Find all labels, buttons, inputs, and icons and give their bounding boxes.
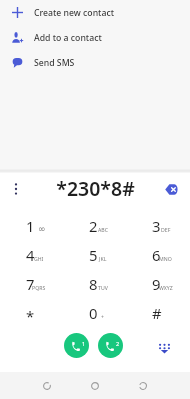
button[interactable]: Key # xyxy=(127,298,190,327)
staticText: MNO xyxy=(159,255,172,262)
staticText: 1 xyxy=(82,340,86,347)
button[interactable]: Key * xyxy=(0,298,64,327)
staticText: WXYZ xyxy=(159,284,173,291)
staticText: ABC xyxy=(98,226,108,233)
staticText: 2 xyxy=(116,340,120,347)
button[interactable]: Call with SIM 1 xyxy=(64,333,89,358)
button[interactable]: Key 4 xyxy=(0,240,64,269)
staticText: * xyxy=(26,306,35,326)
button[interactable]: Call with SIM 2 xyxy=(98,333,123,358)
staticText: GHI xyxy=(34,255,44,262)
button[interactable]: Key 8 xyxy=(64,269,127,298)
button[interactable]: Key 6 xyxy=(127,240,190,269)
button[interactable]: Recents xyxy=(131,374,155,398)
staticText: 5 xyxy=(89,245,98,265)
button[interactable]: Backspace xyxy=(162,180,180,198)
staticText: 4 xyxy=(26,245,35,265)
button[interactable]: Key 5 xyxy=(64,240,127,269)
button[interactable]: Key 1 xyxy=(0,211,64,240)
staticText: + xyxy=(101,313,104,320)
button[interactable]: Key 2 xyxy=(64,211,127,240)
button[interactable]: Back xyxy=(35,374,59,398)
staticText: TUV xyxy=(98,284,108,291)
staticText: 7 xyxy=(26,274,35,294)
staticText: 1 xyxy=(26,216,35,236)
button[interactable]: Key 0 xyxy=(64,298,127,327)
staticText: Add to a contact xyxy=(34,32,102,44)
button[interactable]: More options xyxy=(8,181,24,197)
staticText: # xyxy=(152,303,162,323)
staticText: DEF xyxy=(161,226,171,233)
staticText: 0 xyxy=(89,303,98,323)
staticText: PQRS xyxy=(32,284,46,291)
button[interactable]: Key 9 xyxy=(127,269,190,298)
button[interactable]: Key 3 xyxy=(127,211,190,240)
button[interactable]: Key 7 xyxy=(0,269,64,298)
button[interactable]: Home xyxy=(83,374,107,398)
button[interactable]: Create new contact xyxy=(0,0,190,25)
button[interactable]: Send SMS xyxy=(0,50,190,75)
staticText: *230*8# xyxy=(56,175,135,202)
staticText: 2 xyxy=(89,216,98,236)
staticText: 8 xyxy=(89,274,98,294)
staticText: 9 xyxy=(152,274,161,294)
staticText: Create new contact xyxy=(34,7,114,19)
staticText: Send SMS xyxy=(34,57,75,69)
staticText: 6 xyxy=(152,245,161,265)
button[interactable]: Hide keypad xyxy=(156,340,172,356)
staticText: JKL xyxy=(99,255,107,262)
button[interactable]: Add to a contact xyxy=(0,25,190,50)
staticText: 3 xyxy=(152,216,161,236)
staticText: ∞ xyxy=(38,224,46,234)
